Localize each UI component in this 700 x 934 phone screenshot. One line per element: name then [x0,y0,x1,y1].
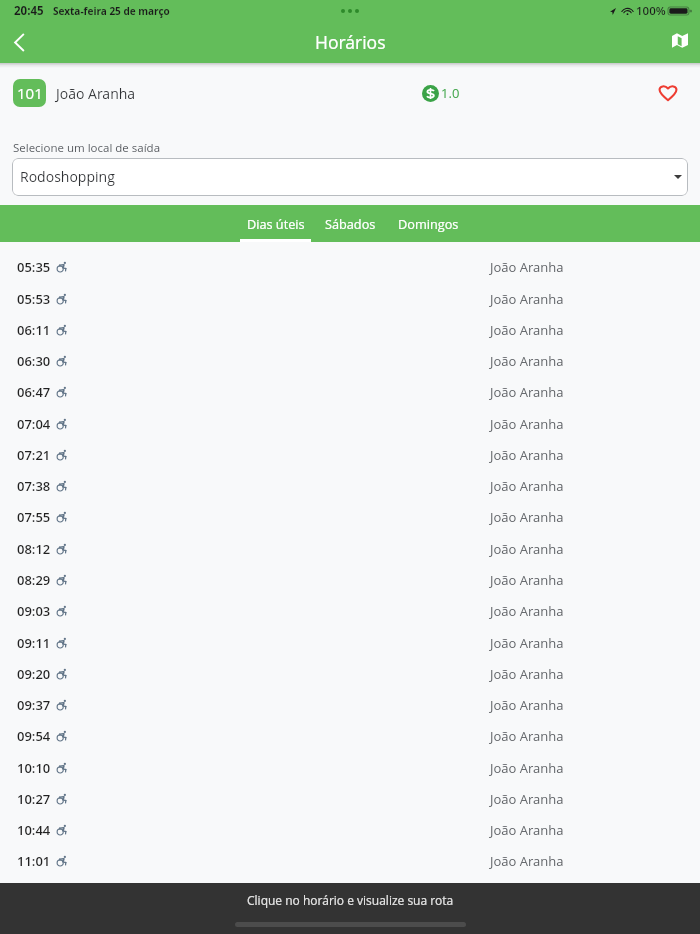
button[interactable]: 10:10 [0,752,700,783]
staticText: 07:21 [17,446,51,464]
button[interactable]: 09:54 [0,720,700,751]
button[interactable]: 05:35 [0,251,700,282]
staticText: 10:10 [17,759,51,777]
button[interactable]: 07:55 [0,501,700,532]
staticText: João Aranha [490,321,564,339]
staticText: Selecione um local de saída [13,140,161,156]
staticText: João Aranha [490,352,564,370]
staticText: 08:29 [17,571,51,589]
button[interactable]: 06:30 [0,345,700,376]
staticText: João Aranha [490,540,564,558]
staticText: Clique no horário e visualize sua rota [247,892,454,908]
staticText: 09:11 [17,634,51,652]
staticText: 07:55 [17,508,51,526]
staticText: Domingos [398,215,459,232]
button[interactable]: 09:20 [0,658,700,689]
staticText: 07:38 [17,477,51,495]
staticText: 09:37 [17,696,51,714]
button[interactable]: 07:04 [0,408,700,439]
staticText: 06:30 [17,352,51,370]
button[interactable]: 06:11 [0,314,700,345]
staticText: Rodoshopping [20,167,115,186]
staticText: 09:03 [17,602,51,620]
staticText: João Aranha [56,84,136,103]
button[interactable]: 11:01 [0,845,700,876]
button[interactable]: 09:03 [0,595,700,626]
button[interactable]: Rodoshopping [12,158,688,196]
button[interactable]: 10:44 [0,814,700,845]
staticText: Horários [315,30,386,54]
staticText: 11:01 [17,852,51,870]
staticText: João Aranha [490,290,564,308]
staticText: 101 [17,83,43,103]
staticText: João Aranha [490,665,564,683]
staticText: João Aranha [490,383,564,401]
button[interactable]: 08:12 [0,533,700,564]
staticText: João Aranha [490,759,564,777]
staticText: 100% [636,3,666,19]
staticText: 05:53 [17,290,51,308]
button[interactable]: 08:29 [0,564,700,595]
staticText: João Aranha [490,602,564,620]
button[interactable]: 06:47 [0,376,700,407]
staticText: 06:47 [17,383,51,401]
staticText: João Aranha [490,415,564,433]
button[interactable]: 07:38 [0,470,700,501]
staticText: 1.0 [441,84,460,102]
staticText: João Aranha [490,571,564,589]
staticText: Sexta-feira 25 de março [53,4,170,18]
button[interactable]: 10:27 [0,783,700,814]
button[interactable]: Dias úteis [240,205,311,242]
staticText: Sábados [325,215,376,232]
button[interactable]: Favoritar [653,79,683,107]
button[interactable]: Voltar [2,26,35,59]
staticText: 06:11 [17,321,51,339]
staticText: João Aranha [490,727,564,745]
staticText: João Aranha [490,790,564,808]
staticText: 07:04 [17,415,51,433]
button[interactable]: Mapa [661,25,695,59]
button[interactable]: Sábados [311,205,389,242]
staticText: 09:54 [17,727,51,745]
staticText: João Aranha [490,696,564,714]
button[interactable]: 05:53 [0,283,700,314]
staticText: João Aranha [490,508,564,526]
staticText: 20:45 [14,3,44,19]
staticText: Dias úteis [247,215,305,232]
staticText: 05:35 [17,258,51,276]
button[interactable]: 07:21 [0,439,700,470]
button[interactable]: 09:11 [0,627,700,658]
staticText: 09:20 [17,665,51,683]
staticText: João Aranha [490,446,564,464]
staticText: João Aranha [490,852,564,870]
staticText: João Aranha [490,634,564,652]
staticText: 08:12 [17,540,51,558]
staticText: 10:27 [17,790,51,808]
staticText: João Aranha [490,258,564,276]
staticText: João Aranha [490,477,564,495]
button[interactable]: Domingos [389,205,467,242]
button[interactable]: 09:37 [0,689,700,720]
staticText: 10:44 [17,821,51,839]
staticText: João Aranha [490,821,564,839]
